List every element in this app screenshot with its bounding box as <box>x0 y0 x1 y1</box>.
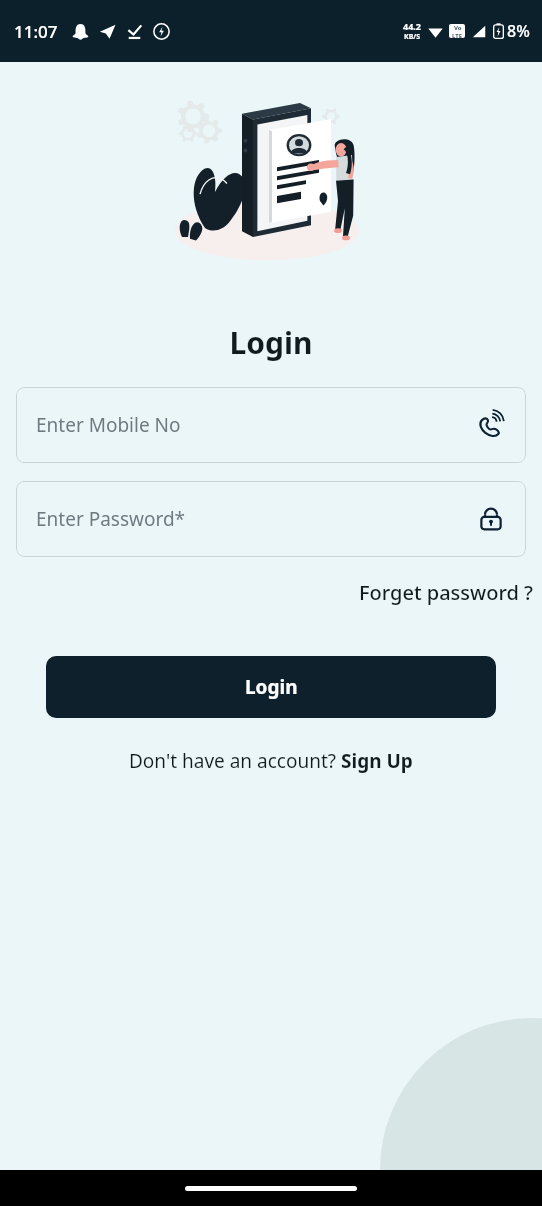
button[interactable]: Sign Up <box>341 748 413 774</box>
staticText: Don't have an account? <box>129 748 341 774</box>
other: Password <box>476 504 506 534</box>
button[interactable]: Login <box>46 656 496 718</box>
button[interactable]: Enter Mobile No <box>16 387 526 463</box>
staticText: LTE <box>452 32 463 38</box>
staticText: Sign Up <box>341 748 413 774</box>
button[interactable]: Forget password ? <box>351 573 542 612</box>
staticText: 8% <box>507 20 530 42</box>
staticText: Enter Mobile No <box>36 412 476 438</box>
staticText: Enter Password* <box>36 506 476 532</box>
staticText: 44.2 <box>403 20 421 32</box>
staticText: KB/S <box>404 32 421 42</box>
staticText: 11:07 <box>14 20 58 43</box>
staticText: Login <box>0 322 542 363</box>
staticText: Login <box>245 674 298 700</box>
other: Phone <box>476 410 506 440</box>
button[interactable]: Enter Password* <box>16 481 526 557</box>
staticText: Vo <box>454 24 462 32</box>
